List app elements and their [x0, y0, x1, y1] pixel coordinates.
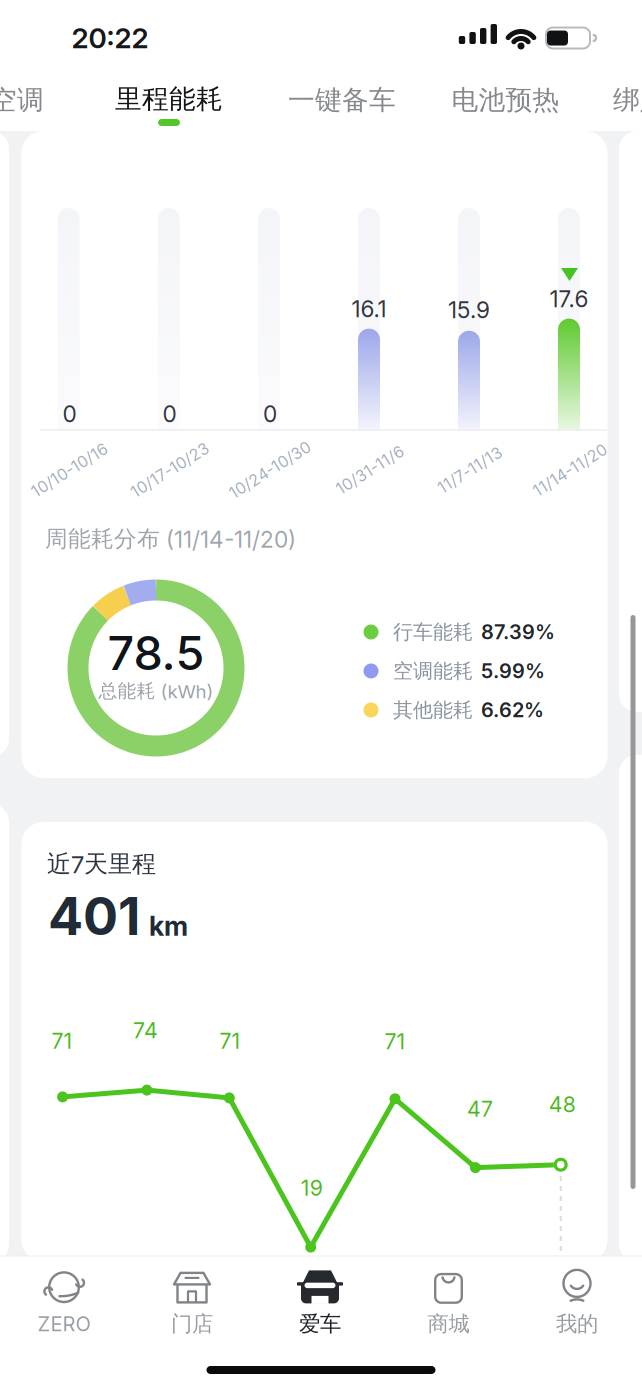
staticText: 78.5	[107, 625, 204, 681]
staticText: 47	[467, 1096, 493, 1122]
staticText: 行车能耗	[393, 620, 473, 644]
staticText: 16.1	[351, 296, 386, 322]
button[interactable]: 电池预热	[451, 84, 559, 116]
button[interactable]: 商城	[427, 1269, 469, 1337]
staticText: 0	[263, 401, 277, 427]
staticText: 15.9	[448, 297, 490, 323]
staticText: 里程能耗	[115, 83, 223, 115]
staticText: 17.6	[549, 286, 588, 312]
staticText: 电池预热	[451, 84, 559, 116]
button[interactable]: 我的	[556, 1269, 598, 1337]
staticText: 0	[62, 401, 76, 427]
staticText: 11/7-11/13	[433, 461, 506, 479]
button[interactable]: 绑定	[613, 84, 642, 116]
staticText: 总能耗 (kWh)	[98, 679, 213, 702]
staticText: km	[149, 910, 188, 942]
staticText: 空调	[0, 84, 44, 116]
staticText: 0	[162, 401, 176, 427]
staticText: 10/10-10/16	[26, 461, 113, 479]
staticText: 周能耗分布 (11/14-11/20)	[45, 525, 296, 553]
staticText: ZERO	[37, 1312, 90, 1336]
staticText: 71	[384, 1029, 405, 1054]
button[interactable]: ZERO	[37, 1270, 90, 1336]
staticText: 20:22	[71, 21, 148, 54]
staticText: 爱车	[299, 1311, 341, 1337]
staticText: 商城	[427, 1311, 469, 1337]
staticText: 10/31-11/6	[331, 461, 408, 479]
staticText: 401	[48, 885, 140, 947]
staticText: 87.39%	[481, 620, 555, 644]
staticText: 11/14-11/20	[528, 461, 612, 479]
button[interactable]: 里程能耗	[115, 83, 223, 115]
staticText: 10/24-10/30	[223, 461, 316, 479]
staticText: 74	[133, 1018, 158, 1043]
staticText: 近7天里程	[47, 849, 156, 879]
button[interactable]: 爱车	[296, 1269, 344, 1337]
staticText: 5.99%	[481, 659, 545, 683]
button[interactable]: 空调	[0, 84, 44, 116]
staticText: 10/17-10/23	[125, 461, 214, 479]
staticText: 48	[549, 1092, 576, 1117]
staticText: 空调能耗	[393, 659, 473, 683]
staticText: 一键备车	[288, 84, 396, 116]
staticText: 6.62%	[481, 698, 544, 722]
staticText: 门店	[171, 1311, 213, 1337]
staticText: 绑定	[613, 84, 642, 116]
button[interactable]: 一键备车	[288, 84, 396, 116]
staticText: 19	[301, 1175, 323, 1201]
button[interactable]: 门店	[171, 1269, 213, 1337]
staticText: 71	[219, 1028, 240, 1054]
staticText: 71	[51, 1028, 72, 1054]
staticText: 我的	[556, 1311, 598, 1337]
staticText: 其他能耗	[393, 698, 473, 722]
